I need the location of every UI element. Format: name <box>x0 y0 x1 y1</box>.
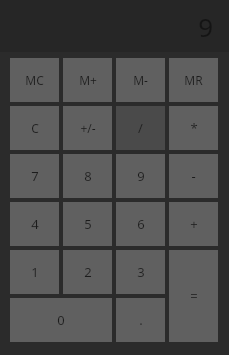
button[interactable]: 4 <box>10 202 59 246</box>
button[interactable]: * <box>169 106 218 150</box>
staticText: 8 <box>84 167 92 185</box>
staticText: 9 <box>198 9 213 44</box>
button[interactable]: 5 <box>63 202 112 246</box>
button[interactable]: 6 <box>116 202 165 246</box>
staticText: 5 <box>84 215 92 233</box>
staticText: 7 <box>31 167 39 185</box>
button[interactable]: + <box>169 202 218 246</box>
button[interactable]: MC <box>10 58 59 102</box>
button[interactable]: 8 <box>63 154 112 198</box>
staticText: 1 <box>31 263 39 281</box>
staticText: 0 <box>57 311 65 329</box>
button[interactable]: 1 <box>10 250 59 294</box>
staticText: C <box>31 120 39 136</box>
staticText: / <box>138 119 143 137</box>
button[interactable]: M- <box>116 58 165 102</box>
staticText: MC <box>25 72 44 88</box>
staticText: 4 <box>31 215 39 233</box>
staticText: MR <box>184 72 203 88</box>
button[interactable]: 7 <box>10 154 59 198</box>
button[interactable]: +/- <box>63 106 112 150</box>
staticText: M- <box>133 72 148 88</box>
button[interactable]: C <box>10 106 59 150</box>
button[interactable]: MR <box>169 58 218 102</box>
button[interactable]: 0 <box>10 298 112 342</box>
staticText: M+ <box>79 72 97 88</box>
staticText: = <box>190 287 198 305</box>
button[interactable]: 9 <box>116 154 165 198</box>
staticText: +/- <box>80 120 96 136</box>
staticText: + <box>190 215 198 233</box>
button[interactable]: M+ <box>63 58 112 102</box>
staticText: 9 <box>137 167 145 185</box>
staticText: 3 <box>137 263 145 281</box>
staticText: 2 <box>84 263 92 281</box>
staticText: 6 <box>137 215 145 233</box>
staticText: - <box>191 167 196 185</box>
staticText: * <box>190 119 198 137</box>
staticText: . <box>139 311 143 329</box>
button[interactable]: 2 <box>63 250 112 294</box>
button[interactable]: 3 <box>116 250 165 294</box>
